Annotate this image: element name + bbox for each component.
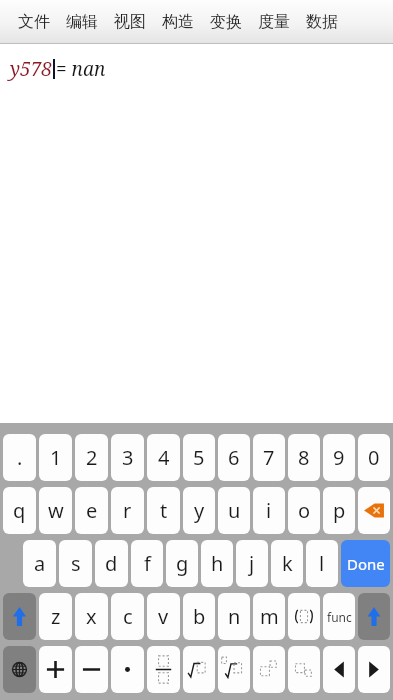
staticText: p [333,497,346,524]
staticText: j [249,550,255,577]
button[interactable]: m [253,593,285,640]
staticText: i [266,497,272,524]
button[interactable]: i [253,487,285,534]
button[interactable]: 0 [358,434,390,481]
staticText: 9 [333,444,345,471]
staticText: y [194,497,205,524]
button[interactable]: Shift [358,593,390,640]
button[interactable]: Nth root [218,646,250,693]
staticText: = nan [56,56,106,82]
staticText: 文件 [18,12,50,32]
staticText: 6 [228,444,240,471]
button[interactable]: v [147,593,180,640]
button[interactable]: y [183,487,215,534]
button[interactable]: f [131,540,163,587]
button[interactable]: h [201,540,233,587]
button[interactable]: Shift [3,593,36,640]
button[interactable]: 6 [218,434,250,481]
staticText: x [86,603,97,630]
staticText: e [86,497,98,524]
staticText: 视图 [114,12,146,32]
button[interactable]: 编辑 [58,6,106,38]
staticText: a [34,550,46,577]
staticText: l [319,550,325,577]
button[interactable]: q [3,487,36,534]
staticText: 编辑 [66,12,98,32]
button[interactable]: 8 [288,434,320,481]
button[interactable]: 9 [323,434,355,481]
button[interactable]: d [95,540,128,587]
button[interactable]: r [111,487,144,534]
button[interactable]: 3 [111,434,144,481]
staticText: 5 [193,444,205,471]
button[interactable]: Move left [323,646,355,693]
staticText: 度量 [258,12,290,32]
button[interactable]: t [147,487,180,534]
staticText: 8 [298,444,310,471]
staticText: g [176,550,189,577]
staticText: u [228,497,241,524]
button[interactable]: g [166,540,198,587]
button[interactable]: k [271,540,303,587]
button[interactable]: Power [253,646,285,693]
button[interactable]: Done [341,540,390,587]
staticText: c [123,603,133,630]
staticText: 构造 [162,12,194,32]
staticText: 2 [86,444,98,471]
button[interactable]: 2 [75,434,108,481]
button[interactable]: Square root [183,646,215,693]
button[interactable]: e [75,487,108,534]
button[interactable]: l [306,540,338,587]
button[interactable]: w [39,487,72,534]
button[interactable]: j [236,540,268,587]
staticText: z [51,603,61,630]
button[interactable]: c [111,593,144,640]
button[interactable]: 文件 [10,6,58,38]
button[interactable]: x [75,593,108,640]
staticText: . [17,444,23,471]
staticText: s [71,550,81,577]
button[interactable]: 数据 [298,6,346,38]
button[interactable]: 视图 [106,6,154,38]
button[interactable]: . [3,434,36,481]
staticText: n [228,603,241,630]
staticText: b [193,603,206,630]
button[interactable]: Change language [3,646,36,693]
button[interactable]: Parentheses [288,593,320,640]
staticText: o [298,497,311,524]
button[interactable]: Plus [39,646,72,693]
button[interactable]: n [218,593,250,640]
staticText: 3 [122,444,134,471]
button[interactable]: func [323,593,355,640]
staticText: r [123,497,132,524]
button[interactable]: 7 [253,434,285,481]
button[interactable]: a [23,540,56,587]
button[interactable]: 1 [39,434,72,481]
button[interactable]: 构造 [154,6,202,38]
button[interactable]: b [183,593,215,640]
button[interactable]: 变换 [202,6,250,38]
staticText: v [158,603,169,630]
button[interactable]: p [323,487,355,534]
button[interactable]: z [39,593,72,640]
staticText: 1 [50,444,62,471]
staticText: y578 [10,56,52,82]
button[interactable]: u [218,487,250,534]
staticText: Done [347,554,385,574]
staticText: 4 [158,444,170,471]
button[interactable]: Move right [358,646,390,693]
button[interactable]: 5 [183,434,215,481]
staticText: 0 [368,444,380,471]
button[interactable]: 4 [147,434,180,481]
button[interactable]: Minus [75,646,108,693]
staticText: 数据 [306,12,338,32]
staticText: h [211,550,224,577]
button[interactable]: o [288,487,320,534]
button[interactable]: Backspace [358,487,390,534]
button[interactable]: Fraction [147,646,180,693]
button[interactable]: Multiply [111,646,144,693]
button[interactable]: 度量 [250,6,298,38]
staticText: t [160,497,168,524]
button[interactable]: s [59,540,92,587]
button[interactable]: Subscript [288,646,320,693]
